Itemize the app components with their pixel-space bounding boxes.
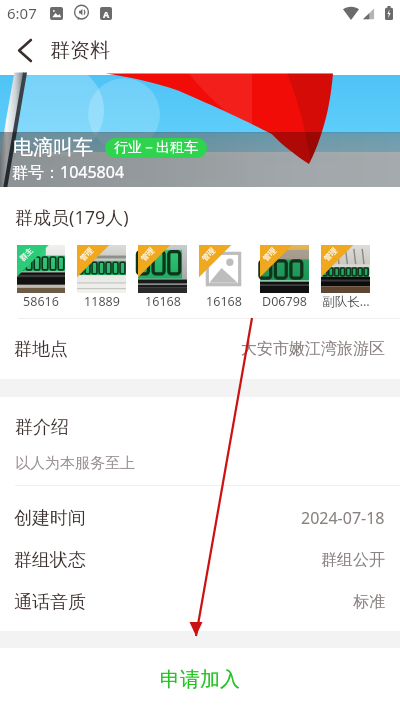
staticText: 管理 bbox=[78, 246, 95, 263]
button[interactable]: 群主 bbox=[17, 245, 65, 310]
staticText: 群介绍 bbox=[15, 416, 69, 439]
staticText: 58616 bbox=[23, 293, 59, 310]
button[interactable]: 通话音质 bbox=[0, 581, 400, 623]
staticText: 11889 bbox=[84, 293, 120, 310]
staticText: 16168 bbox=[145, 293, 181, 310]
staticText: D06798 bbox=[262, 293, 307, 310]
button[interactable]: 管理 bbox=[77, 245, 126, 310]
staticText: 申请加入 bbox=[160, 667, 240, 692]
staticText: 副队长… bbox=[322, 293, 370, 310]
staticText: 管理 bbox=[261, 246, 278, 263]
button[interactable]: 群成员(179人) bbox=[0, 187, 400, 245]
staticText: 以人为本服务至上 bbox=[15, 454, 135, 473]
button[interactable]: 管理 bbox=[138, 245, 187, 310]
staticText: 群地点 bbox=[14, 338, 68, 361]
staticText: 通话音质 bbox=[14, 591, 86, 614]
button[interactable]: 申请加入 bbox=[0, 648, 400, 711]
staticText: 群组公开 bbox=[321, 550, 385, 570]
staticText: 大安市嫩江湾旅游区 bbox=[241, 339, 385, 359]
staticText: 群组状态 bbox=[14, 549, 86, 572]
staticText: 管理 bbox=[200, 246, 217, 263]
staticText: 群号：1045804 bbox=[12, 161, 125, 183]
button[interactable]: 管理 bbox=[260, 245, 309, 310]
staticText: 行业－出租车 bbox=[114, 139, 198, 157]
staticText: 6:07 bbox=[7, 3, 37, 23]
staticText: 管理 bbox=[139, 246, 156, 263]
button[interactable]: 群介绍 bbox=[0, 397, 400, 486]
staticText: 2024-07-18 bbox=[301, 507, 385, 529]
staticText: 16168 bbox=[206, 293, 242, 310]
staticText: 群成员(179人) bbox=[15, 205, 129, 230]
staticText: 标准 bbox=[353, 592, 385, 612]
button[interactable]: 返回 bbox=[0, 26, 48, 75]
staticText: 管理 bbox=[322, 246, 339, 263]
button[interactable]: 创建时间 bbox=[0, 497, 400, 539]
button[interactable]: 群组状态 bbox=[0, 539, 400, 581]
button[interactable]: 管理 bbox=[321, 245, 370, 310]
staticText: 群主 bbox=[18, 246, 35, 263]
button[interactable]: 管理 bbox=[199, 245, 248, 310]
button[interactable]: 群地点 bbox=[0, 319, 400, 379]
staticText: 创建时间 bbox=[14, 507, 86, 530]
staticText: 电滴叫车 bbox=[13, 135, 93, 160]
staticText: 群资料 bbox=[50, 38, 110, 63]
staticText: A bbox=[103, 8, 110, 20]
